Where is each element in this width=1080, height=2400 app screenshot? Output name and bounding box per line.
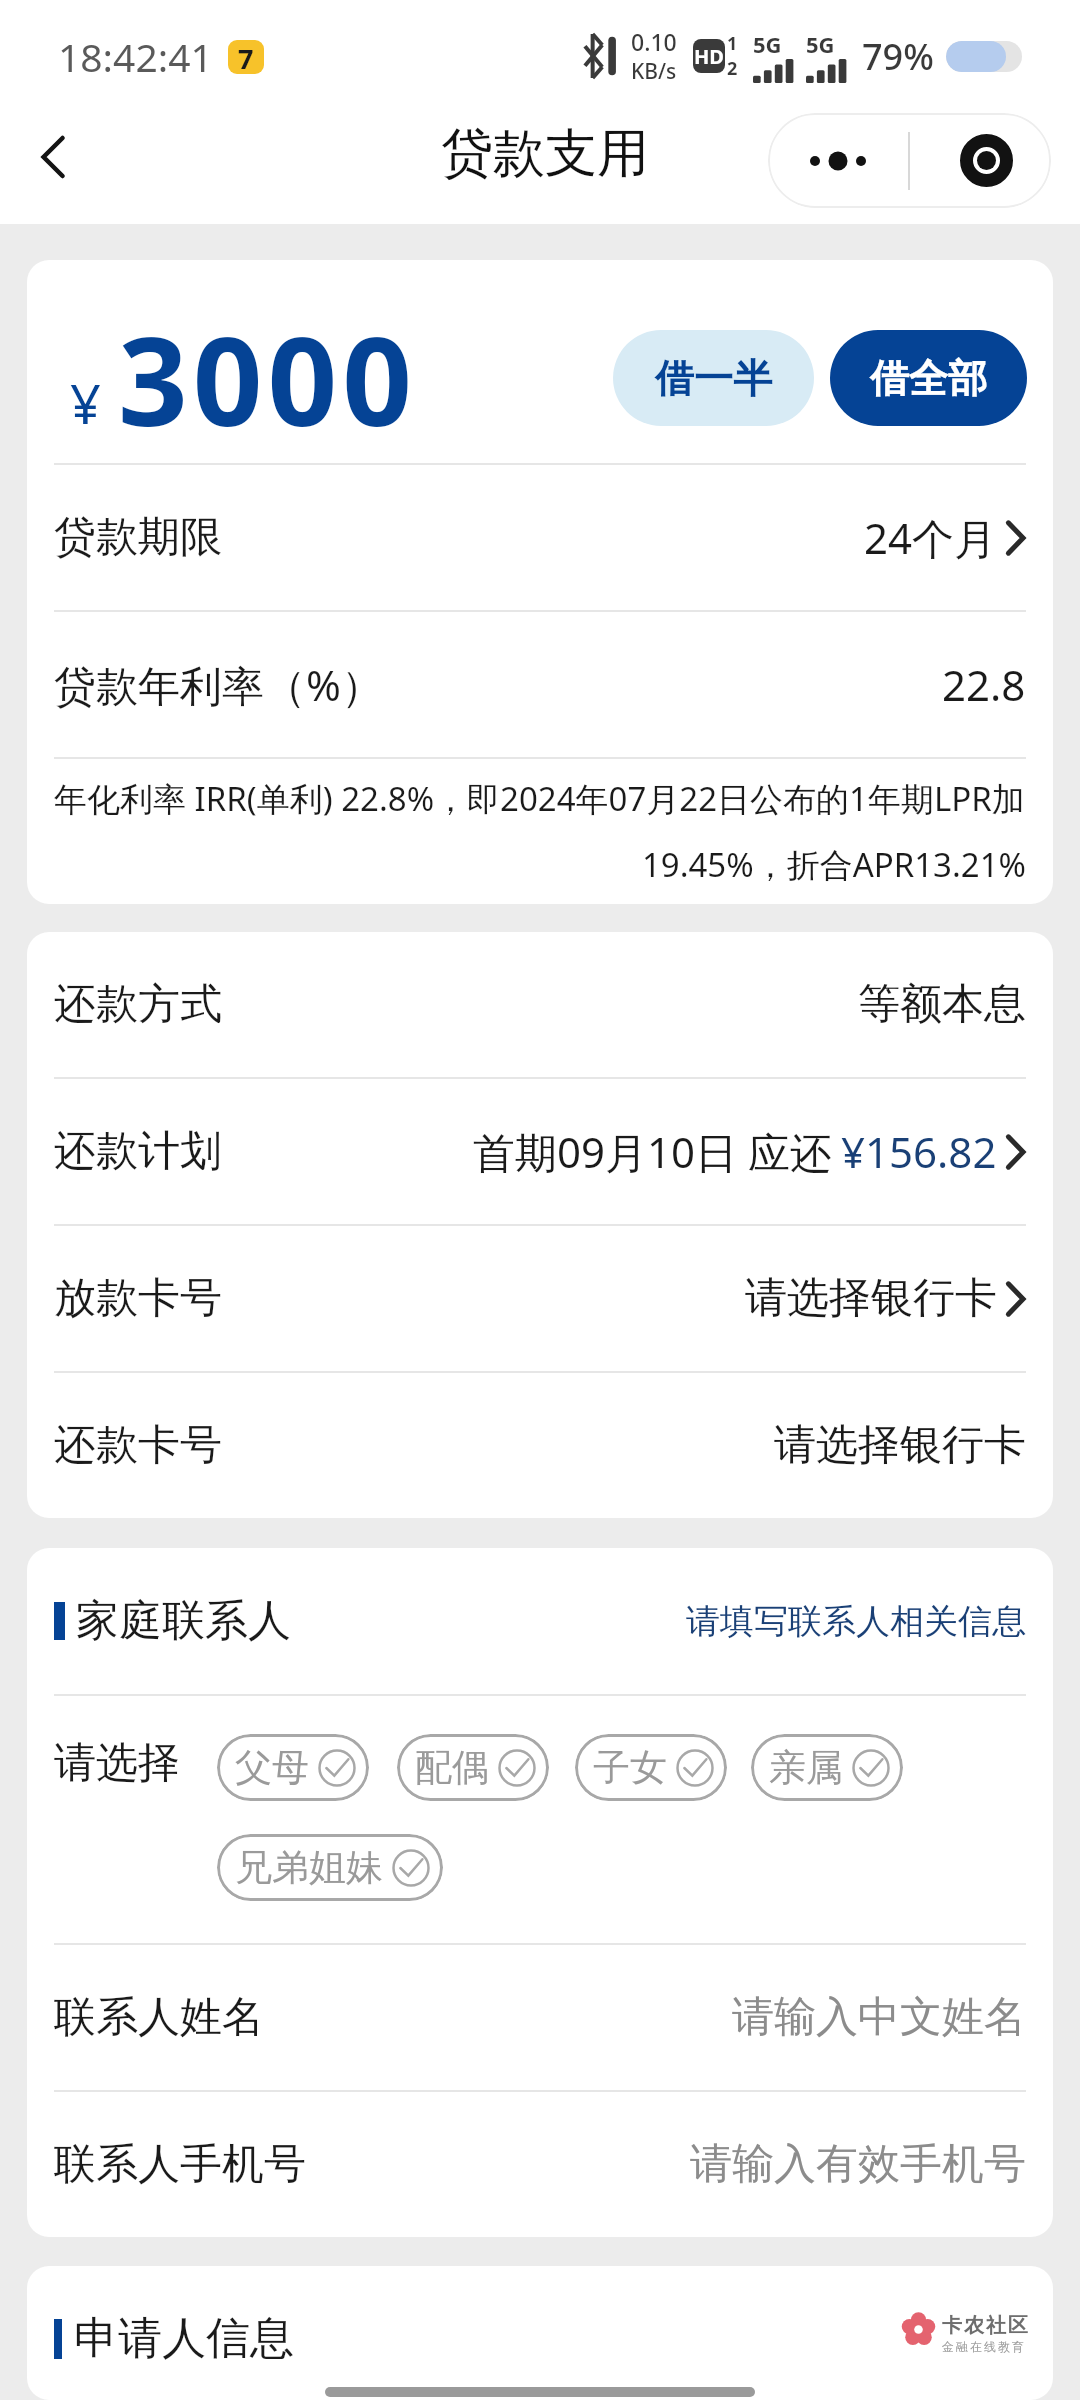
staticText: 请填写联系人相关信息	[686, 1600, 1026, 1643]
staticText: 2	[727, 56, 738, 81]
staticText: 还款方式	[54, 978, 222, 1031]
staticText: 借一半	[655, 354, 772, 403]
button[interactable]: 还款计划	[27, 1079, 1053, 1224]
button[interactable]: 贷款年利率（%）	[27, 612, 1053, 757]
staticText: 7	[238, 40, 254, 74]
staticText: 子女	[593, 1744, 667, 1791]
staticText: 请输入有效手机号	[690, 2138, 1026, 2191]
staticText: 配偶	[415, 1744, 489, 1791]
staticText: 联系人手机号	[54, 2138, 306, 2191]
button[interactable]: Close	[910, 113, 1051, 208]
staticText: 3000	[118, 296, 418, 462]
staticText: 申请人信息	[74, 2311, 294, 2366]
staticText: 还款卡号	[54, 1419, 222, 1472]
staticText: 请输入中文姓名	[732, 1991, 1026, 2044]
button[interactable]: 还款方式	[27, 932, 1053, 1077]
staticText: 22.8	[942, 656, 1026, 713]
staticText: HD	[694, 43, 724, 70]
staticText: 19.45%，折合APR13.21%	[54, 842, 1026, 887]
staticText: 父母	[235, 1744, 309, 1791]
staticText: ¥	[70, 366, 101, 440]
staticText: 0.10	[631, 26, 677, 57]
staticText: 18:42:41	[58, 30, 213, 83]
button[interactable]: 亲属	[751, 1734, 903, 1801]
staticText: 还款计划	[54, 1125, 222, 1178]
button[interactable]: 父母	[217, 1734, 369, 1801]
button[interactable]: Back	[20, 119, 96, 195]
staticText: 请选择银行卡	[774, 1419, 1026, 1472]
button[interactable]: 还款卡号	[27, 1373, 1053, 1518]
button[interactable]: 子女	[575, 1734, 727, 1801]
staticText: 等额本息	[858, 978, 1026, 1031]
staticText: KB/s	[631, 57, 677, 86]
staticText: 借全部	[870, 354, 987, 403]
button[interactable]: 申请人信息	[54, 2311, 294, 2366]
staticText: 贷款期限	[54, 511, 222, 564]
button[interactable]: 借全部	[830, 330, 1027, 426]
button[interactable]: 家庭联系人	[27, 1548, 1053, 1694]
button[interactable]: 配偶	[397, 1734, 549, 1801]
staticText: 贷款支用	[441, 121, 649, 187]
staticText: 请选择	[54, 1737, 180, 1790]
button[interactable]: 放款卡号	[27, 1226, 1053, 1371]
staticText: 贷款年利率（%）	[54, 656, 383, 713]
staticText: ¥156.82	[841, 1123, 997, 1180]
button[interactable]: 贷款期限	[27, 465, 1053, 610]
button[interactable]: More options	[768, 113, 908, 208]
staticText: 金融在线教育	[941, 2339, 1025, 2354]
staticText: 79%	[862, 32, 934, 81]
staticText: 家庭联系人	[76, 1594, 291, 1648]
button[interactable]: 联系人手机号	[27, 2092, 1053, 2237]
staticText: 首期09月10日 应还	[473, 1123, 833, 1180]
staticText: 年化利率 IRR(单利) 22.8%，即2024年07月22日公布的1年期LPR…	[54, 776, 1026, 821]
staticText: 1	[727, 31, 738, 56]
button[interactable]: 借一半	[613, 330, 814, 426]
staticText: 兄弟姐妹	[235, 1844, 383, 1891]
staticText: 联系人姓名	[54, 1991, 264, 2044]
button[interactable]: 联系人姓名	[27, 1945, 1053, 2090]
staticText: 请选择银行卡	[745, 1272, 997, 1325]
button[interactable]: 兄弟姐妹	[217, 1834, 443, 1901]
staticText: 5G	[806, 29, 835, 59]
staticText: 亲属	[769, 1744, 843, 1791]
staticText: 放款卡号	[54, 1272, 222, 1325]
staticText: 24个月	[864, 509, 997, 566]
staticText: 卡农社区	[941, 2313, 1029, 2338]
staticText: 5G	[753, 29, 782, 59]
